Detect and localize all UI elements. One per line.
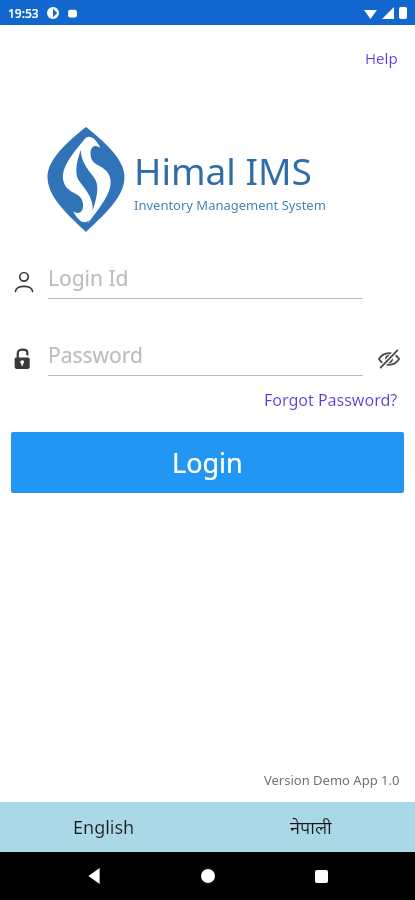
staticText: 19:53 (8, 5, 39, 21)
staticText: Himal IMS (134, 145, 312, 195)
button[interactable]: Help (360, 45, 403, 71)
staticText: Login (172, 444, 243, 481)
staticText: English (73, 815, 135, 840)
staticText: Forgot Password? (264, 389, 398, 411)
button[interactable]: Home (188, 856, 228, 896)
button[interactable]: Password (0, 335, 415, 383)
other: User (0, 258, 48, 306)
staticText: Password (48, 341, 143, 370)
button[interactable]: User (0, 258, 415, 306)
other: Show password (377, 347, 401, 371)
staticText: नेपाली (290, 815, 332, 840)
staticText: Help (365, 48, 398, 68)
staticText: Inventory Management System (134, 196, 326, 214)
staticText: Version Demo App 1.0 (264, 771, 400, 789)
button[interactable]: English (0, 802, 207, 852)
other: Password (0, 335, 48, 383)
button[interactable]: नेपाली (207, 802, 415, 852)
button[interactable]: Forgot Password? (260, 386, 402, 414)
button[interactable]: Show password (373, 343, 405, 375)
button[interactable]: Recents (301, 856, 341, 896)
button[interactable]: Back (74, 856, 114, 896)
button[interactable]: Login (11, 432, 404, 493)
staticText: Login Id (48, 264, 129, 293)
